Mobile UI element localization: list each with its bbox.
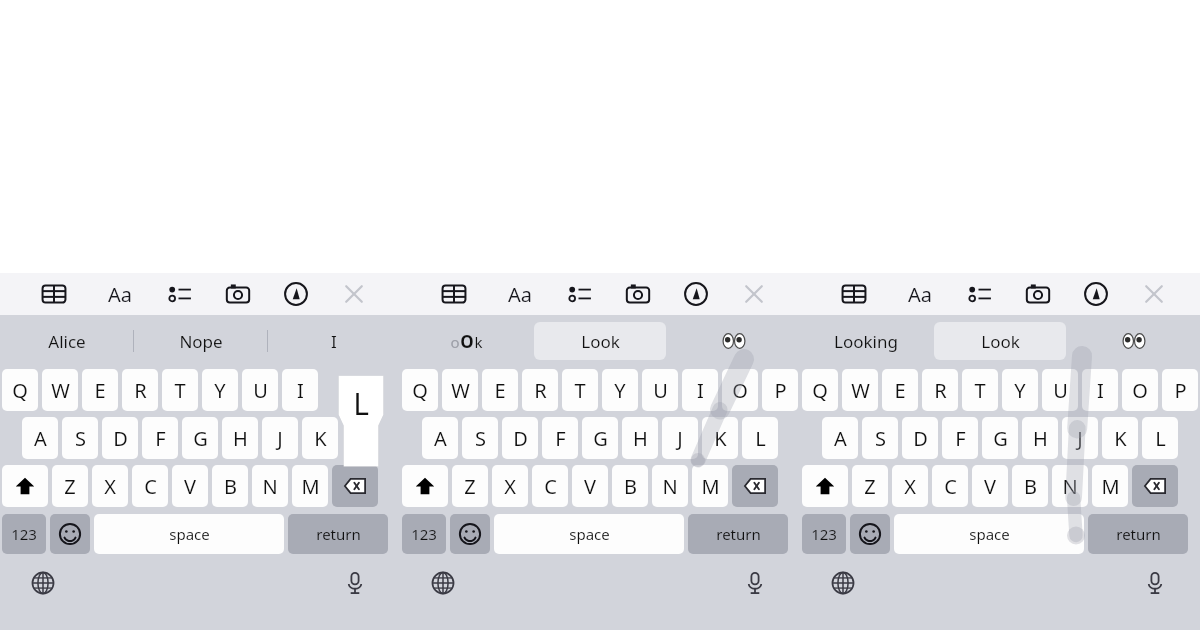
button[interactable]: I	[268, 315, 400, 367]
button[interactable]: Looking	[800, 315, 932, 367]
button[interactable]: U	[1042, 369, 1078, 411]
button[interactable]: M	[692, 465, 728, 507]
button[interactable]: O	[722, 369, 758, 411]
button[interactable]: 123	[402, 514, 446, 554]
button[interactable]: I	[282, 369, 318, 411]
button[interactable]: Markup	[276, 274, 316, 314]
button[interactable]: 123	[802, 514, 846, 554]
button[interactable]: Switch keyboard	[26, 566, 60, 600]
button[interactable]: space	[894, 514, 1084, 554]
button[interactable]: Checklist	[160, 274, 200, 314]
button[interactable]: H	[222, 417, 258, 459]
button[interactable]: R	[922, 369, 958, 411]
button[interactable]: space	[494, 514, 684, 554]
button[interactable]: Checklist	[960, 274, 1000, 314]
button[interactable]: Q	[802, 369, 838, 411]
button[interactable]: W	[42, 369, 78, 411]
button[interactable]: V	[172, 465, 208, 507]
button[interactable]: Dictation	[338, 566, 372, 600]
button[interactable]: Camera	[218, 274, 258, 314]
button[interactable]: X	[92, 465, 128, 507]
button[interactable]: Dictation	[1138, 566, 1172, 600]
button[interactable]: 123	[2, 514, 46, 554]
button[interactable]: Close	[334, 274, 374, 314]
button[interactable]: Y	[202, 369, 238, 411]
button[interactable]: Table	[834, 274, 874, 314]
button[interactable]: Aa	[898, 273, 942, 315]
button[interactable]: Close	[1134, 274, 1174, 314]
button[interactable]: T	[162, 369, 198, 411]
button[interactable]: B	[212, 465, 248, 507]
button[interactable]: X	[492, 465, 528, 507]
button[interactable]: Y	[1002, 369, 1038, 411]
button[interactable]: Look	[534, 322, 666, 360]
button[interactable]: L	[1142, 417, 1178, 459]
button[interactable]: R	[122, 369, 158, 411]
button[interactable]: return	[1088, 514, 1188, 554]
button[interactable]: C	[532, 465, 568, 507]
button[interactable]: Emoji	[450, 514, 490, 554]
button[interactable]: G	[182, 417, 218, 459]
button[interactable]: Backspace	[1132, 465, 1178, 507]
button[interactable]: O	[1122, 369, 1158, 411]
button[interactable]	[1068, 315, 1200, 367]
button[interactable]: A	[22, 417, 58, 459]
button[interactable]: T	[562, 369, 598, 411]
button[interactable]: I	[682, 369, 718, 411]
button[interactable]: Shift	[802, 465, 848, 507]
button[interactable]: Aa	[498, 273, 542, 315]
button[interactable]: Table	[434, 274, 474, 314]
button[interactable]: U	[642, 369, 678, 411]
button[interactable]: H	[622, 417, 658, 459]
button[interactable]: J	[662, 417, 698, 459]
button[interactable]: F	[942, 417, 978, 459]
button[interactable]: Switch keyboard	[426, 566, 460, 600]
button[interactable]: Dictation	[738, 566, 772, 600]
button[interactable]: Backspace	[732, 465, 778, 507]
button[interactable]: space	[94, 514, 284, 554]
button[interactable]: M	[1092, 465, 1128, 507]
button[interactable]: Look	[934, 322, 1066, 360]
button[interactable]: D	[102, 417, 138, 459]
button[interactable]: P	[762, 369, 798, 411]
button[interactable]: Z	[452, 465, 488, 507]
button[interactable]: E	[82, 369, 118, 411]
button[interactable]: U	[242, 369, 278, 411]
button[interactable]: Backspace	[332, 465, 378, 507]
button[interactable]: Emoji	[50, 514, 90, 554]
button[interactable]: B	[612, 465, 648, 507]
button[interactable]: D	[902, 417, 938, 459]
button[interactable]: Z	[52, 465, 88, 507]
button[interactable]: S	[862, 417, 898, 459]
button[interactable]: G	[582, 417, 618, 459]
button[interactable]: return	[288, 514, 388, 554]
button[interactable]: W	[842, 369, 878, 411]
button[interactable]: W	[442, 369, 478, 411]
button[interactable]: M	[292, 465, 328, 507]
button[interactable]: N	[252, 465, 288, 507]
button[interactable]: N	[1052, 465, 1088, 507]
button[interactable]	[668, 315, 800, 367]
button[interactable]: Nope	[134, 315, 267, 367]
button[interactable]: S	[62, 417, 98, 459]
button[interactable]: L	[742, 417, 778, 459]
button[interactable]: I	[1082, 369, 1118, 411]
button[interactable]: K	[702, 417, 738, 459]
button[interactable]: Y	[602, 369, 638, 411]
button[interactable]: Markup	[676, 274, 716, 314]
button[interactable]: Close	[734, 274, 774, 314]
button[interactable]: o	[400, 315, 532, 367]
button[interactable]: X	[892, 465, 928, 507]
button[interactable]: Table	[34, 274, 74, 314]
button[interactable]: G	[982, 417, 1018, 459]
button[interactable]: J	[262, 417, 298, 459]
button[interactable]: Camera	[1018, 274, 1058, 314]
button[interactable]: K	[1102, 417, 1138, 459]
button[interactable]: R	[522, 369, 558, 411]
button[interactable]: V	[572, 465, 608, 507]
button[interactable]: F	[142, 417, 178, 459]
button[interactable]: A	[422, 417, 458, 459]
button[interactable]: C	[132, 465, 168, 507]
button[interactable]: K	[302, 417, 338, 459]
button[interactable]: H	[1022, 417, 1058, 459]
